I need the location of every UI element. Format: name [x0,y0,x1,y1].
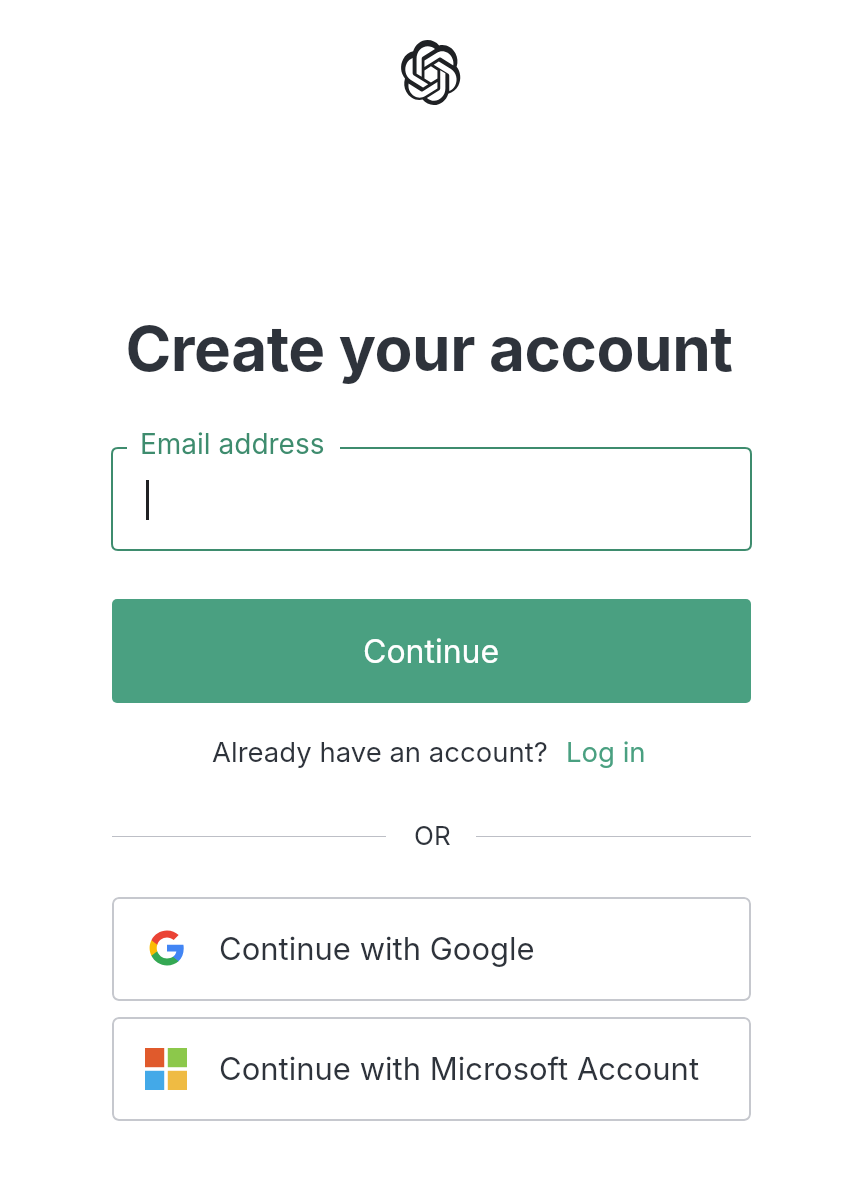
button[interactable]: Log in [566,735,646,768]
staticText: Continue [363,632,500,671]
staticText: Email address [140,427,325,461]
staticText: Continue with Microsoft Account [219,1050,700,1088]
staticText: Create your account [0,311,858,386]
button[interactable]: Continue with Microsoft Account [112,1017,751,1121]
other: OpenAI logo [401,40,461,105]
button[interactable]: Email address field [112,448,751,550]
button[interactable]: Continue [112,599,751,703]
staticText: Continue with Google [219,930,535,968]
staticText: OR [414,820,451,851]
staticText: Already have an account? [212,735,548,768]
button[interactable]: Continue with Google [112,897,751,1001]
staticText: Log in [566,735,646,768]
